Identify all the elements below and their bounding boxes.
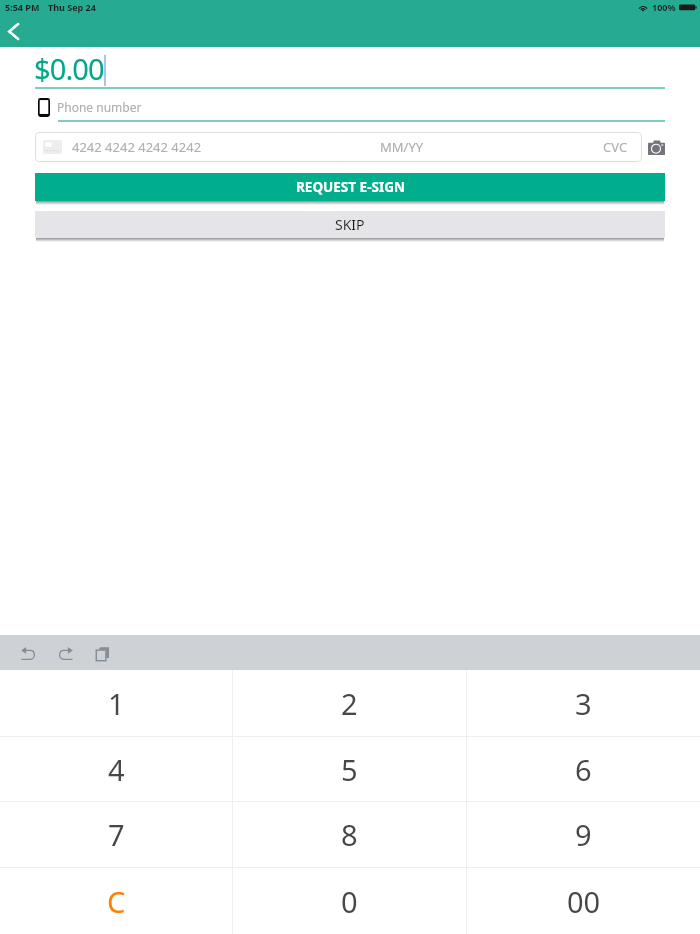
staticText: 4 [108, 750, 125, 789]
staticText: 8 [341, 815, 358, 854]
button[interactable]: C [0, 868, 232, 934]
button[interactable]: SKIP [35, 211, 665, 238]
button[interactable]: REQUEST E-SIGN [35, 173, 665, 201]
button[interactable]: 00 [467, 868, 700, 934]
staticText: CVC [603, 138, 628, 156]
staticText: MM/YY [380, 138, 424, 156]
staticText: 9 [575, 815, 592, 854]
button[interactable]: Scan card [646, 138, 666, 156]
staticText: 4242 4242 4242 4242 [72, 138, 202, 156]
staticText: 100% [652, 1, 676, 13]
staticText: 0 [341, 882, 358, 921]
staticText: 1 [108, 684, 125, 723]
button[interactable]: 2 [233, 670, 466, 736]
button[interactable]: 7 [0, 802, 232, 867]
button[interactable]: Back [0, 18, 26, 44]
button[interactable]: Undo [10, 637, 46, 670]
button[interactable]: 3 [467, 670, 700, 736]
staticText: SKIP [335, 215, 365, 234]
button[interactable]: 1 [0, 670, 232, 736]
button[interactable]: 8 [233, 802, 466, 867]
staticText: 7 [108, 815, 125, 854]
staticText: Phone number [57, 99, 142, 115]
button[interactable]: 9 [467, 802, 700, 867]
staticText: 2 [341, 684, 358, 723]
staticText: REQUEST E-SIGN [296, 178, 405, 196]
staticText: 5 [341, 750, 358, 789]
staticText: C [107, 882, 126, 921]
staticText: 5:54 PM [5, 1, 40, 13]
button[interactable]: 4 [0, 737, 232, 801]
button[interactable]: 5 [233, 737, 466, 801]
button[interactable]: Redo [47, 637, 83, 670]
staticText: 3 [575, 684, 592, 723]
staticText: Thu Sep 24 [48, 1, 96, 13]
button[interactable]: Paste [84, 637, 120, 670]
button[interactable]: 0 [233, 868, 466, 934]
button[interactable]: 4242 4242 4242 4242 [35, 132, 642, 162]
staticText: 00 [567, 882, 601, 921]
staticText: $0.00 [34, 49, 104, 88]
button[interactable]: 6 [467, 737, 700, 801]
staticText: 6 [575, 750, 592, 789]
